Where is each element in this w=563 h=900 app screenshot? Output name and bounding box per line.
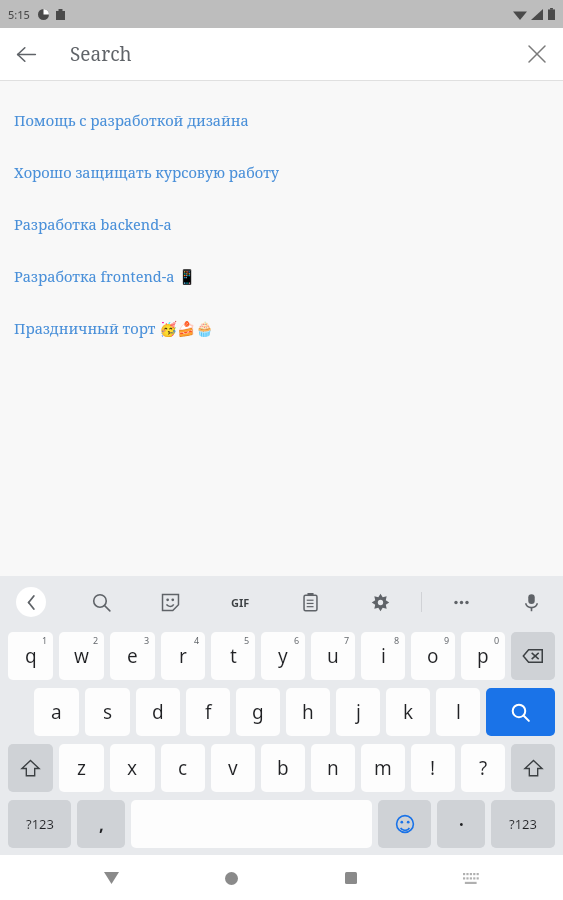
button[interactable]: Backspace <box>511 632 555 680</box>
staticText: Разработка frontend-a 📱 <box>14 266 197 286</box>
button[interactable]: e <box>110 632 155 680</box>
staticText: Помощь с разработкой дизайна <box>14 110 249 130</box>
button[interactable]: f <box>186 688 230 736</box>
button[interactable]: b <box>261 744 305 792</box>
staticText: ! <box>430 755 436 781</box>
button[interactable]: Symbols <box>491 800 555 848</box>
staticText: b <box>277 755 289 781</box>
staticText: 5:15 <box>8 7 30 22</box>
staticText: o <box>427 643 439 669</box>
staticText: p <box>477 643 489 669</box>
staticText: j <box>356 699 361 725</box>
button[interactable]: a <box>34 688 79 736</box>
button[interactable]: Voice input <box>514 585 548 619</box>
staticText: z <box>77 755 86 781</box>
staticText: y <box>278 643 288 669</box>
button[interactable]: g <box>236 688 280 736</box>
button[interactable]: GIF <box>224 586 256 618</box>
button[interactable]: Разработка backend-a <box>0 198 563 250</box>
button[interactable]: v <box>211 744 255 792</box>
staticText: 4 <box>194 634 200 646</box>
button[interactable]: q <box>8 632 53 680</box>
staticText: e <box>127 643 138 669</box>
staticText: 8 <box>394 634 400 646</box>
button[interactable]: x <box>110 744 155 792</box>
button[interactable]: t <box>211 632 255 680</box>
button[interactable]: Search <box>84 585 118 619</box>
button[interactable]: Stickers <box>153 585 187 619</box>
button[interactable]: d <box>136 688 180 736</box>
button[interactable]: Period <box>437 800 485 848</box>
button[interactable]: c <box>161 744 205 792</box>
staticText: d <box>152 699 164 725</box>
button[interactable]: z <box>59 744 104 792</box>
staticText: Search <box>70 41 132 67</box>
staticText: u <box>327 643 339 669</box>
button[interactable]: Comma <box>77 800 125 848</box>
staticText: v <box>228 755 238 781</box>
staticText: s <box>103 699 113 725</box>
staticText: x <box>127 755 138 781</box>
button[interactable]: ! <box>411 744 455 792</box>
staticText: Хорошо защищать курсовую работу <box>14 162 280 182</box>
button[interactable]: Shift <box>511 744 555 792</box>
staticText: 7 <box>344 634 350 646</box>
staticText: , <box>99 813 104 836</box>
button[interactable]: j <box>336 688 380 736</box>
button[interactable]: Shift <box>8 744 53 792</box>
button[interactable]: k <box>386 688 430 736</box>
button[interactable]: s <box>85 688 130 736</box>
button[interactable]: w <box>59 632 104 680</box>
button[interactable]: m <box>361 744 405 792</box>
button[interactable]: h <box>286 688 330 736</box>
staticText: ? <box>479 755 488 781</box>
staticText: i <box>381 643 386 669</box>
button[interactable]: l <box>436 688 480 736</box>
staticText: 5 <box>244 634 250 646</box>
staticText: 1 <box>42 634 48 646</box>
staticText: c <box>178 755 188 781</box>
button[interactable]: Back <box>91 858 131 898</box>
button[interactable]: Search <box>486 688 555 736</box>
staticText: m <box>374 755 392 781</box>
button[interactable]: Разработка frontend-a 📱 <box>0 250 563 302</box>
button[interactable]: r <box>161 632 205 680</box>
button[interactable]: ? <box>461 744 505 792</box>
button[interactable]: Хорошо защищать курсовую работу <box>0 146 563 198</box>
staticText: 6 <box>294 634 300 646</box>
button[interactable]: y <box>261 632 305 680</box>
button[interactable]: Clear <box>511 28 563 80</box>
staticText: k <box>403 699 414 725</box>
staticText: Разработка backend-a <box>14 214 172 234</box>
button[interactable]: Помощь с разработкой дизайна <box>0 94 563 146</box>
staticText: n <box>327 755 339 781</box>
button[interactable]: Праздничный торт 🥳🍰🧁 <box>0 302 563 354</box>
button[interactable]: Switch keyboard <box>451 858 491 898</box>
staticText: 2 <box>93 634 99 646</box>
button[interactable]: i <box>361 632 405 680</box>
staticText: r <box>179 643 187 669</box>
button[interactable]: Recents <box>331 858 371 898</box>
button[interactable]: Home <box>211 858 251 898</box>
staticText: g <box>252 699 264 725</box>
button[interactable]: u <box>311 632 355 680</box>
staticText: ?123 <box>26 815 54 833</box>
button[interactable]: Settings <box>363 585 397 619</box>
staticText: Праздничный торт 🥳🍰🧁 <box>14 318 214 338</box>
staticText: w <box>74 643 89 669</box>
button[interactable]: Emoji <box>378 800 431 848</box>
staticText: f <box>205 699 212 725</box>
button[interactable]: p <box>461 632 505 680</box>
staticText: ?123 <box>509 815 537 833</box>
button[interactable]: o <box>411 632 455 680</box>
button[interactable]: n <box>311 744 355 792</box>
button[interactable]: Back <box>0 28 52 80</box>
staticText: h <box>302 699 314 725</box>
button[interactable]: Back <box>16 587 46 617</box>
button[interactable]: More options <box>444 585 478 619</box>
staticText: 3 <box>144 634 150 646</box>
button[interactable]: Clipboard <box>293 585 327 619</box>
button[interactable]: Symbols <box>8 800 71 848</box>
staticText: t <box>230 643 237 669</box>
